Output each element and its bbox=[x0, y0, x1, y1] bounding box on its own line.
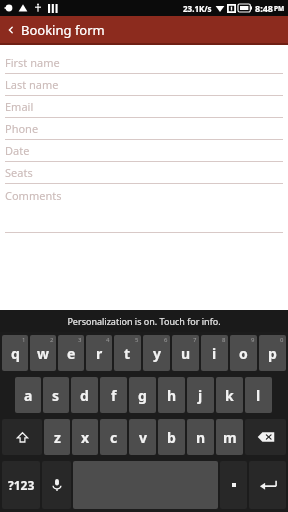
button[interactable]: c bbox=[100, 419, 127, 455]
button[interactable]: h bbox=[158, 377, 185, 413]
button[interactable]: v bbox=[129, 419, 156, 455]
button[interactable]: z bbox=[44, 419, 70, 455]
staticText: f bbox=[111, 386, 117, 405]
staticText: k bbox=[225, 386, 234, 405]
staticText: PM bbox=[274, 4, 285, 13]
staticText: p bbox=[268, 344, 277, 363]
staticText: 5 bbox=[135, 336, 139, 344]
staticText: h bbox=[167, 386, 177, 405]
staticText: 2 bbox=[50, 336, 54, 344]
staticText: 8:48 bbox=[255, 2, 273, 14]
staticText: Booking form bbox=[21, 21, 105, 39]
staticText: 0 bbox=[280, 336, 284, 344]
staticText: r bbox=[96, 344, 103, 363]
staticText: Last name bbox=[5, 77, 59, 92]
button[interactable]: 5 bbox=[114, 335, 141, 371]
staticText: c bbox=[110, 428, 118, 447]
button[interactable]: n bbox=[187, 419, 214, 455]
staticText: 4 bbox=[106, 336, 110, 344]
staticText: 6 bbox=[164, 336, 168, 344]
button[interactable]: Date bbox=[5, 140, 283, 162]
button[interactable]: Seats bbox=[5, 162, 283, 184]
button[interactable]: f bbox=[100, 377, 127, 413]
button[interactable]: k bbox=[216, 377, 243, 413]
button[interactable]: 4 bbox=[86, 335, 112, 371]
staticText: b bbox=[167, 428, 176, 447]
staticText: Email bbox=[5, 99, 34, 114]
staticText: 7 bbox=[193, 336, 197, 344]
button[interactable]: s bbox=[43, 377, 69, 413]
staticText: q bbox=[11, 344, 20, 363]
button[interactable]: 7 bbox=[172, 335, 199, 371]
button[interactable]: g bbox=[129, 377, 156, 413]
button[interactable]: 6 bbox=[143, 335, 170, 371]
button[interactable]: a bbox=[15, 377, 41, 413]
staticText: i bbox=[212, 344, 217, 363]
button[interactable]: First name bbox=[5, 52, 283, 74]
staticText: l bbox=[256, 386, 261, 405]
staticText: s bbox=[52, 386, 60, 405]
other: Back bbox=[6, 25, 16, 35]
button[interactable]: Voice input bbox=[42, 461, 71, 509]
button[interactable]: Enter bbox=[249, 461, 286, 509]
button[interactable]: l bbox=[245, 377, 272, 413]
button[interactable]: Backspace bbox=[245, 419, 286, 455]
button[interactable]: 2 bbox=[30, 335, 56, 371]
button[interactable]: Personalization is on. Touch for info. bbox=[0, 310, 288, 332]
button[interactable]: Email bbox=[5, 96, 283, 118]
button[interactable]: j bbox=[187, 377, 214, 413]
button[interactable]: 9 bbox=[230, 335, 257, 371]
staticText: v bbox=[139, 428, 147, 447]
staticText: x bbox=[81, 428, 90, 447]
button[interactable]: d bbox=[71, 377, 98, 413]
button[interactable]: Phone bbox=[5, 118, 283, 140]
staticText: a bbox=[24, 386, 33, 405]
staticText: n bbox=[196, 428, 206, 447]
button[interactable]: Shift bbox=[2, 419, 42, 455]
button[interactable]: 8 bbox=[201, 335, 228, 371]
staticText: z bbox=[54, 428, 61, 447]
button[interactable]: b bbox=[158, 419, 185, 455]
staticText: u bbox=[181, 344, 191, 363]
staticText: 1 bbox=[22, 336, 26, 344]
staticText: 23.1K/s bbox=[183, 3, 212, 14]
button[interactable]: Last name bbox=[5, 74, 283, 96]
staticText: Comments bbox=[5, 188, 62, 203]
staticText: j bbox=[198, 386, 203, 405]
staticText: ?123 bbox=[8, 477, 35, 493]
staticText: Phone bbox=[5, 121, 39, 136]
button[interactable]: Comments bbox=[5, 184, 283, 233]
button[interactable]: 1 bbox=[2, 335, 28, 371]
button[interactable]: ?123 bbox=[2, 461, 40, 509]
staticText: First name bbox=[5, 55, 60, 70]
staticText: d bbox=[80, 386, 89, 405]
staticText: Date bbox=[5, 143, 30, 158]
staticText: o bbox=[239, 344, 248, 363]
staticText: e bbox=[67, 344, 76, 363]
staticText: 9 bbox=[251, 336, 255, 344]
button[interactable]: m bbox=[216, 419, 243, 455]
staticText: 3 bbox=[78, 336, 82, 344]
staticText: Seats bbox=[5, 165, 33, 180]
staticText: g bbox=[138, 386, 147, 405]
button[interactable] bbox=[220, 461, 247, 509]
staticText: t bbox=[124, 344, 131, 363]
button[interactable]: x bbox=[72, 419, 98, 455]
staticText: y bbox=[153, 344, 161, 363]
button[interactable]: 3 bbox=[58, 335, 84, 371]
staticText: w bbox=[37, 344, 49, 363]
staticText: m bbox=[223, 428, 237, 447]
staticText: 8 bbox=[222, 336, 226, 344]
button[interactable]: 0 bbox=[259, 335, 286, 371]
button[interactable]: Back bbox=[0, 16, 288, 43]
staticText: Personalization is on. Touch for info. bbox=[67, 315, 221, 327]
